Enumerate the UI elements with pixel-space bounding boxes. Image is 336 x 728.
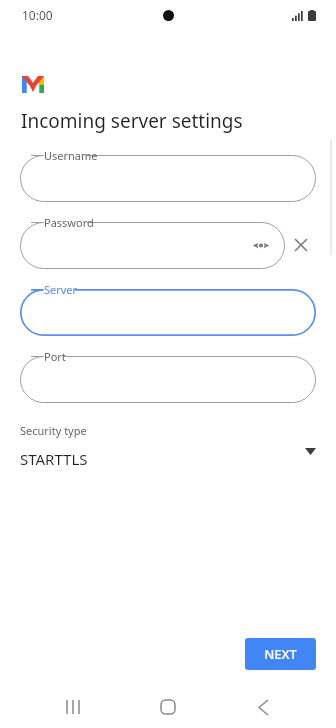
- button[interactable]: Password: [20, 213, 285, 269]
- staticText: Password: [44, 215, 94, 230]
- staticText: Incoming server settings: [21, 108, 243, 134]
- button[interactable]: Server: [20, 280, 316, 336]
- staticText: Security type: [20, 423, 87, 438]
- button[interactable]: Port: [20, 347, 316, 403]
- button[interactable]: Clear password: [287, 231, 315, 259]
- button[interactable]: Recent apps: [51, 686, 95, 728]
- staticText: Username: [44, 148, 98, 163]
- button[interactable]: Security type: [20, 423, 316, 469]
- button[interactable]: NEXT: [245, 638, 316, 670]
- staticText: STARTTLS: [20, 449, 88, 469]
- staticText: Port: [44, 349, 66, 364]
- staticText: Server: [44, 282, 78, 297]
- staticText: NEXT: [264, 645, 297, 663]
- button[interactable]: Home: [146, 686, 190, 728]
- button[interactable]: Username: [20, 146, 316, 202]
- button[interactable]: Show password: [249, 233, 273, 257]
- button[interactable]: Back: [241, 686, 285, 728]
- staticText: 10:00: [22, 7, 53, 23]
